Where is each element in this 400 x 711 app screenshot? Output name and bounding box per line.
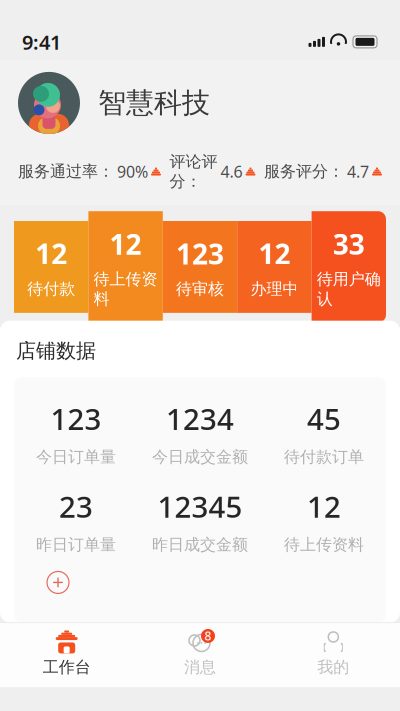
staticText: 待审核 (176, 279, 224, 299)
staticText: 45 (307, 399, 341, 438)
button[interactable]: 头像 (18, 72, 80, 134)
staticText: 我的 (317, 657, 349, 677)
button[interactable]: 12 (14, 221, 88, 313)
button[interactable]: 添加数据 (36, 560, 80, 604)
staticText: 工作台 (43, 657, 91, 677)
button[interactable]: 12 (88, 211, 163, 323)
staticText: 评论评分： (169, 152, 217, 191)
staticText: 12345 (157, 487, 242, 526)
staticText: 12 (307, 487, 341, 526)
staticText: 昨日订单量 (36, 535, 116, 554)
staticText: 12 (110, 225, 142, 262)
staticText: 今日成交金额 (152, 447, 248, 467)
staticText: 23 (59, 487, 93, 526)
staticText: 智慧科技 (98, 86, 210, 120)
staticText: 123 (176, 235, 224, 272)
staticText: 办理中 (250, 279, 298, 299)
staticText: 8 (204, 628, 211, 644)
staticText: 1234 (166, 399, 234, 438)
staticText: 4.6 (220, 161, 242, 182)
staticText: 9:41 (22, 29, 61, 55)
button[interactable]: 我的 (267, 622, 400, 687)
staticText: 123 (50, 399, 101, 438)
staticText: 待付款 (27, 279, 75, 299)
staticText: 待上传资料 (284, 535, 364, 554)
staticText: 消息 (184, 657, 216, 677)
staticText: 待付款订单 (284, 447, 364, 467)
staticText: 店铺数据 (16, 339, 96, 363)
button[interactable]: 33 (312, 211, 386, 323)
staticText: 33 (333, 225, 365, 262)
button[interactable]: 12 (237, 221, 312, 313)
staticText: 90% (117, 161, 148, 182)
staticText: 4.7 (347, 161, 369, 182)
staticText: 12 (35, 235, 67, 272)
staticText: 待上传资料 (94, 269, 158, 309)
staticText: 昨日成交金额 (152, 535, 248, 554)
staticText: 服务评分： (264, 162, 344, 181)
staticText: 12 (258, 235, 290, 272)
staticText: 服务通过率： (18, 162, 114, 181)
button[interactable]: 123 (163, 221, 237, 313)
staticText: 今日订单量 (36, 447, 116, 467)
button[interactable]: 工作台 (0, 622, 133, 687)
button[interactable]: 8 (133, 622, 267, 687)
staticText: 待用户确认 (317, 269, 381, 309)
